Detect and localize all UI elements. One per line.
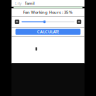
staticText: City — [14, 0, 21, 6]
staticText: CALCULATE — [37, 29, 59, 34]
staticText: Tamil — [24, 0, 34, 6]
staticText: Fan Working Hours : 35 % — [23, 10, 73, 15]
button[interactable]: CALCULATE — [15, 29, 80, 35]
button[interactable]: City — [11, 0, 84, 7]
